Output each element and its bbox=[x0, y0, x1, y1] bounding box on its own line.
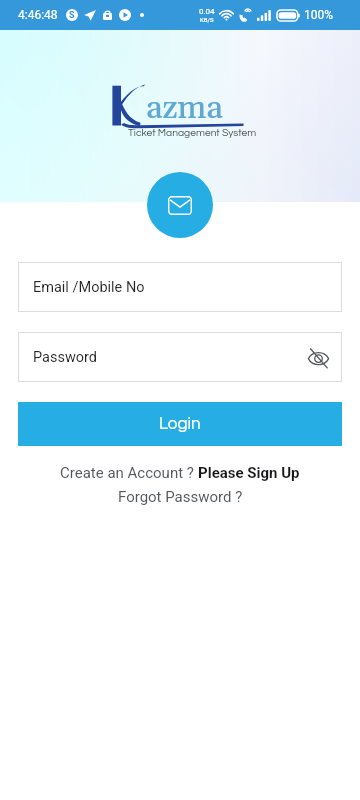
button[interactable]: Forgot Password ? bbox=[118, 488, 243, 506]
staticText: 4:46:48 bbox=[18, 8, 58, 22]
button[interactable]: Please Sign Up bbox=[198, 464, 300, 482]
button[interactable]: Email /Mobile No bbox=[18, 262, 342, 312]
staticText: S bbox=[69, 10, 75, 21]
staticText: 0.04 bbox=[199, 7, 215, 16]
staticText: Forgot Password ? bbox=[118, 488, 243, 506]
staticText: Password bbox=[33, 349, 98, 366]
staticText: Ticket Management System bbox=[128, 128, 257, 139]
button[interactable]: Login bbox=[18, 402, 342, 446]
staticText: azma bbox=[146, 88, 224, 129]
button[interactable]: Password bbox=[18, 332, 342, 382]
staticText: KB/S bbox=[200, 16, 214, 23]
button[interactable]: Email bbox=[147, 172, 213, 238]
staticText: Please Sign Up bbox=[198, 464, 300, 482]
staticText: 100% bbox=[304, 8, 334, 22]
staticText: Email /Mobile No bbox=[33, 279, 145, 296]
staticText: Create an Account ? bbox=[60, 464, 198, 482]
button[interactable]: Show password bbox=[305, 344, 331, 370]
staticText: Login bbox=[159, 415, 201, 433]
